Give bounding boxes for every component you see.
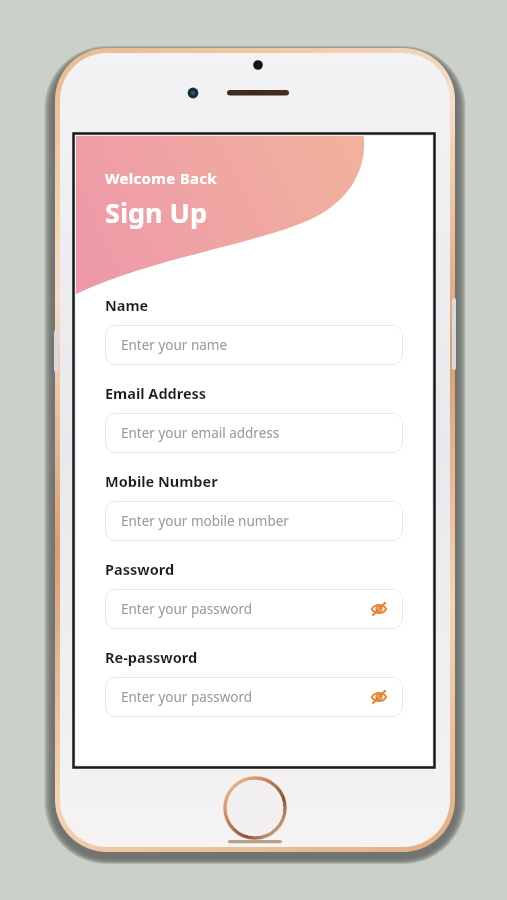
staticText: Email Address (105, 383, 207, 403)
button[interactable]: Show password (368, 598, 390, 620)
button[interactable]: Enter your name (105, 325, 403, 365)
button[interactable]: Show password (368, 686, 390, 708)
staticText: Sign Up (105, 194, 208, 231)
button[interactable]: Enter your password (105, 677, 403, 717)
staticText: Name (105, 295, 149, 315)
button[interactable]: Enter your password (105, 589, 403, 629)
staticText: Welcome Back (105, 168, 217, 188)
staticText: Re-password (105, 647, 198, 667)
staticText: Mobile Number (105, 471, 218, 491)
staticText: Enter your email address (121, 424, 390, 442)
button[interactable]: Enter your mobile number (105, 501, 403, 541)
staticText: Enter your password (121, 688, 368, 706)
staticText: Enter your mobile number (121, 512, 390, 530)
staticText: Enter your password (121, 600, 368, 618)
staticText: Enter your name (121, 336, 390, 354)
staticText: Password (105, 559, 175, 579)
button[interactable]: Enter your email address (105, 413, 403, 453)
